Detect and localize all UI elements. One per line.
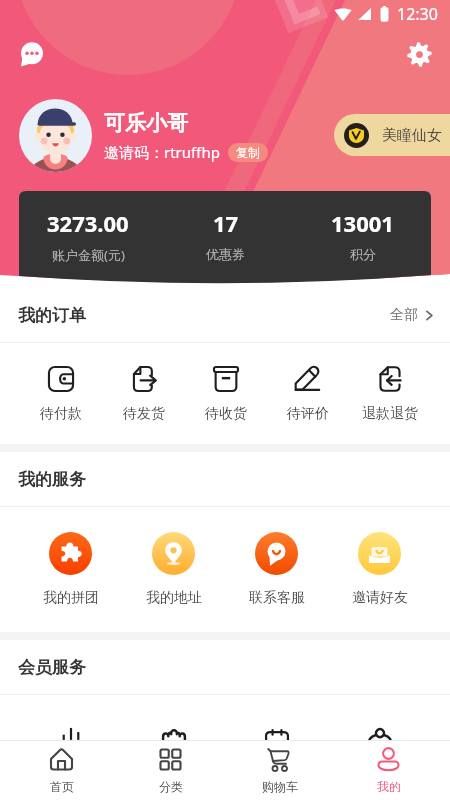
staticText: 13001 xyxy=(331,208,394,238)
staticText: 我的地址 xyxy=(146,589,202,607)
button[interactable]: Crown xyxy=(122,695,225,799)
button[interactable]: Card xyxy=(225,695,328,799)
staticText: 待收货 xyxy=(205,405,247,423)
staticText: 我的 xyxy=(377,779,401,794)
staticText: 邀请码：rtruffhp xyxy=(104,142,220,162)
button[interactable]: 我的地址 xyxy=(122,507,225,632)
staticText: 购物车 xyxy=(262,779,298,794)
button[interactable]: 待发货 xyxy=(102,343,185,444)
button[interactable]: 待收货 xyxy=(185,343,267,444)
button[interactable]: Umbrella xyxy=(328,695,431,799)
button[interactable]: 3273.00 xyxy=(19,208,157,264)
button[interactable]: 购物车 xyxy=(225,741,334,800)
staticText: 优惠券 xyxy=(206,246,245,262)
staticText: 我的拼团 xyxy=(43,589,99,607)
staticText: 3273.00 xyxy=(47,208,129,238)
button[interactable]: 复制 xyxy=(228,143,268,162)
button[interactable]: 17 xyxy=(157,208,294,262)
button[interactable]: 退款退货 xyxy=(349,343,431,444)
button[interactable]: 我的拼团 xyxy=(19,507,122,632)
staticText: 我的订单 xyxy=(18,305,86,326)
button[interactable]: 分类 xyxy=(116,741,225,800)
staticText: 首页 xyxy=(50,779,74,794)
staticText: 邀请好友 xyxy=(352,589,408,607)
button[interactable]: Messages xyxy=(13,36,49,72)
button[interactable]: Settings xyxy=(401,36,437,72)
staticText: 17 xyxy=(213,208,239,238)
button[interactable]: 联系客服 xyxy=(225,507,328,632)
button[interactable]: 全部 xyxy=(390,306,450,324)
staticText: 退款退货 xyxy=(362,405,418,423)
button[interactable]: 待评价 xyxy=(267,343,349,444)
button[interactable] xyxy=(19,99,92,172)
staticText: 账户金额(元) xyxy=(52,246,125,264)
staticText: 联系客服 xyxy=(249,589,305,607)
button[interactable]: Statistics xyxy=(19,695,122,799)
staticText: 复制 xyxy=(236,145,260,160)
button[interactable]: 邀请好友 xyxy=(328,507,431,632)
staticText: 我的服务 xyxy=(18,469,86,490)
staticText: 12:30 xyxy=(397,3,438,25)
button[interactable]: 待付款 xyxy=(19,343,102,444)
staticText: 会员服务 xyxy=(18,657,86,678)
staticText: 待付款 xyxy=(40,405,82,423)
staticText: 分类 xyxy=(159,779,183,794)
staticText: 积分 xyxy=(350,246,376,262)
button[interactable]: 我的 xyxy=(334,741,443,800)
button[interactable]: 13001 xyxy=(294,208,431,262)
staticText: 全部 xyxy=(390,306,418,324)
staticText: 待发货 xyxy=(123,405,165,423)
staticText: 待评价 xyxy=(287,405,329,423)
staticText: 可乐小哥 xyxy=(104,110,188,136)
button[interactable]: 美瞳仙女 xyxy=(334,114,450,156)
button[interactable]: 首页 xyxy=(7,741,116,800)
staticText: 美瞳仙女 xyxy=(382,126,442,145)
